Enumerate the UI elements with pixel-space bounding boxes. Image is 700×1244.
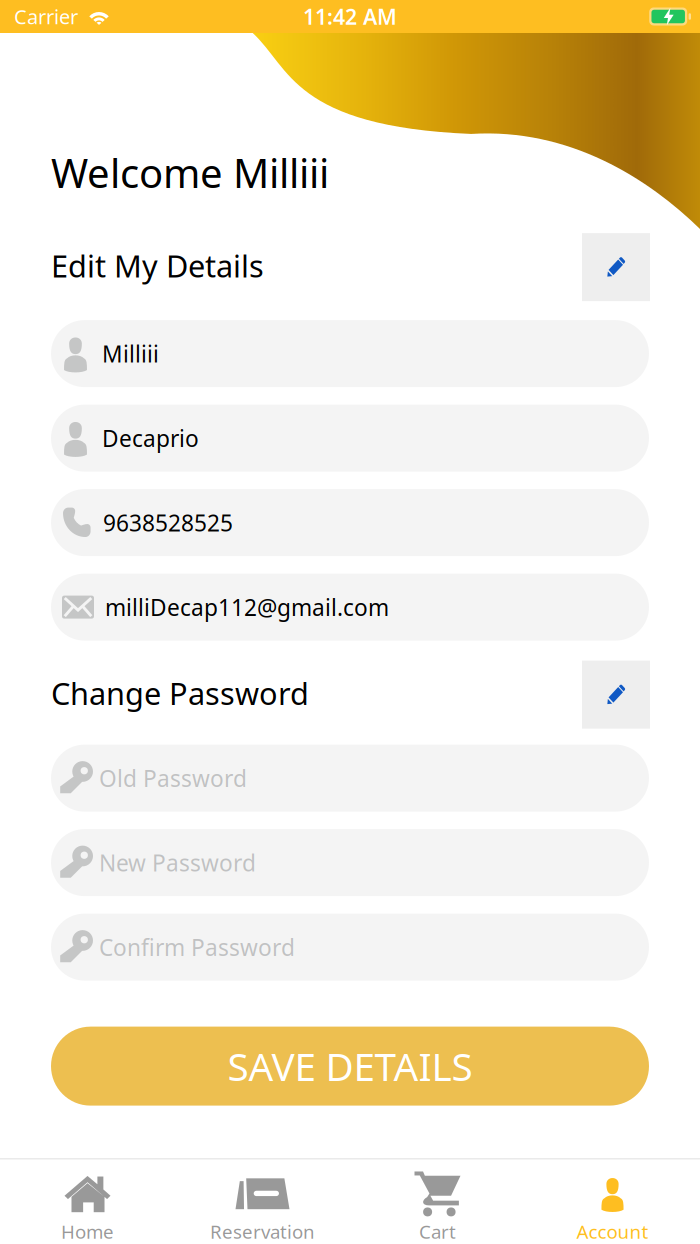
staticText: Carrier <box>14 3 78 30</box>
button[interactable]: Edit <box>582 230 650 301</box>
staticText: Account <box>576 1219 648 1244</box>
staticText: SAVE DETAILS <box>227 1040 472 1092</box>
button[interactable]: SAVE DETAILS <box>51 1027 649 1106</box>
staticText: Milliii <box>102 339 159 369</box>
staticText: Old Password <box>99 763 247 793</box>
staticText: Cart <box>419 1219 456 1244</box>
staticText: Decaprio <box>102 423 199 453</box>
staticText: 9638528525 <box>103 508 233 538</box>
button[interactable]: Cart <box>350 1158 525 1244</box>
staticText: Home <box>61 1219 114 1244</box>
staticText: milliDecap112@gmail.com <box>105 592 389 622</box>
staticText: Welcome Milliii <box>51 146 329 199</box>
button[interactable]: Account <box>525 1158 700 1244</box>
staticText: 11:42 AM <box>303 2 397 31</box>
staticText: New Password <box>99 848 256 878</box>
staticText: Confirm Password <box>99 932 295 962</box>
staticText: Edit My Details <box>51 245 264 286</box>
staticText: Change Password <box>51 673 309 713</box>
staticText: Reservation <box>210 1219 315 1244</box>
button[interactable]: Home <box>0 1158 175 1244</box>
button[interactable]: Reservation <box>175 1158 350 1244</box>
button[interactable]: Edit <box>582 658 650 729</box>
